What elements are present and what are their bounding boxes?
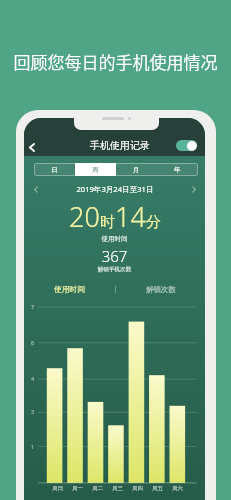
- staticText: 使用时间: [24, 235, 205, 243]
- staticText: 367: [24, 246, 205, 266]
- staticText: 周二: [92, 485, 103, 492]
- button[interactable]: 年: [157, 163, 198, 176]
- staticText: 周六: [172, 485, 183, 492]
- staticText: 年: [174, 166, 181, 174]
- staticText: 分: [146, 213, 161, 232]
- staticText: 周一: [72, 485, 83, 492]
- staticText: 4: [31, 375, 35, 382]
- button[interactable]: 使用时间: [25, 283, 115, 295]
- staticText: 周三: [112, 485, 123, 492]
- button[interactable]: Previous week: [30, 183, 42, 195]
- staticText: 周日: [52, 485, 63, 492]
- staticText: 3: [31, 408, 35, 415]
- staticText: 周: [92, 166, 99, 174]
- staticText: 手机使用记录: [90, 139, 150, 152]
- staticText: 回顾您每日的手机使用情况: [0, 49, 231, 74]
- staticText: 1: [31, 443, 35, 450]
- button[interactable]: Next week: [188, 183, 200, 195]
- button[interactable]: 月: [116, 163, 157, 176]
- staticText: 14: [115, 198, 146, 235]
- staticText: 6: [31, 339, 35, 346]
- staticText: 使用时间: [54, 284, 86, 294]
- button[interactable]: 日: [34, 163, 75, 176]
- staticText: 日: [51, 166, 58, 174]
- staticText: 月: [133, 166, 140, 174]
- staticText: 周四: [132, 485, 143, 492]
- staticText: 解锁次数: [146, 285, 176, 294]
- staticText: 解锁手机次数: [24, 266, 205, 273]
- staticText: 2019年3月24日至31日: [42, 184, 188, 194]
- staticText: 20: [69, 198, 100, 235]
- button[interactable]: Back: [24, 138, 41, 156]
- button[interactable]: Toggle usage tracking: [176, 140, 197, 151]
- button[interactable]: 周: [75, 163, 116, 176]
- button[interactable]: 解锁次数: [116, 283, 205, 295]
- staticText: 时: [100, 213, 115, 232]
- staticText: 周五: [152, 485, 163, 492]
- staticText: 7: [31, 303, 35, 310]
